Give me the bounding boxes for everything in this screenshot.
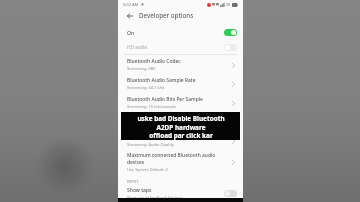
staticText: Show visual feedback for taps [127,195,183,200]
button[interactable]: Show taps [118,185,243,202]
staticText: On [127,29,135,36]
other: Open [229,137,237,145]
staticText: Streaming: Stereo [127,123,161,128]
button[interactable]: Bluetooth Audio Bits Per Sample [118,93,243,112]
staticText: INPUT [127,179,139,184]
button[interactable]: Toggle on [224,29,237,36]
button[interactable]: Toggle off [224,190,237,197]
staticText: Streaming: 44.1 kHz [127,85,165,90]
staticText: Streaming: SBC [127,66,156,71]
other: Open [229,99,237,107]
button[interactable]: Bluetooth Audio Codec [118,55,243,74]
staticText: Streaming: Audio Quality [127,142,174,147]
other: Open [229,80,237,88]
staticText: 5:02 AM [123,2,139,7]
staticText: Bluetooth Audio Sample Rate [127,77,196,84]
staticText: Use System Default: 2 [127,167,168,172]
staticText: Bluetooth Audio Codec [127,58,181,65]
button[interactable]: HD audio [118,40,243,54]
button[interactable]: Maximum connected Bluetooth audio device… [118,150,243,174]
button[interactable]: Bluetooth Audio Channel Mode [118,112,243,131]
button[interactable]: On [118,25,243,40]
button: Toggle off [224,44,237,51]
staticText: Show taps [127,187,152,194]
staticText: Developer options [139,11,194,19]
other: Open [229,61,237,69]
staticText: Bluetooth Audio Channel Mode [127,115,201,122]
staticText: Bluetooth Audio LDAC Codec [127,134,195,141]
button[interactable]: Bluetooth Audio LDAC Codec [118,131,243,150]
staticText: uske bad Disable Bluetooth A2DP hardware… [137,114,225,139]
button[interactable]: Back [124,10,135,21]
staticText: Maximum connected Bluetooth audio device… [127,152,226,166]
staticText: Bluetooth Audio Bits Per Sample [127,96,203,103]
staticText: HD audio [127,44,148,50]
button[interactable]: Bluetooth Audio Sample Rate [118,74,243,93]
staticText: 28 [226,2,231,7]
other: Open [229,158,237,166]
staticText: Streaming: 16 bits/sample [127,104,177,109]
